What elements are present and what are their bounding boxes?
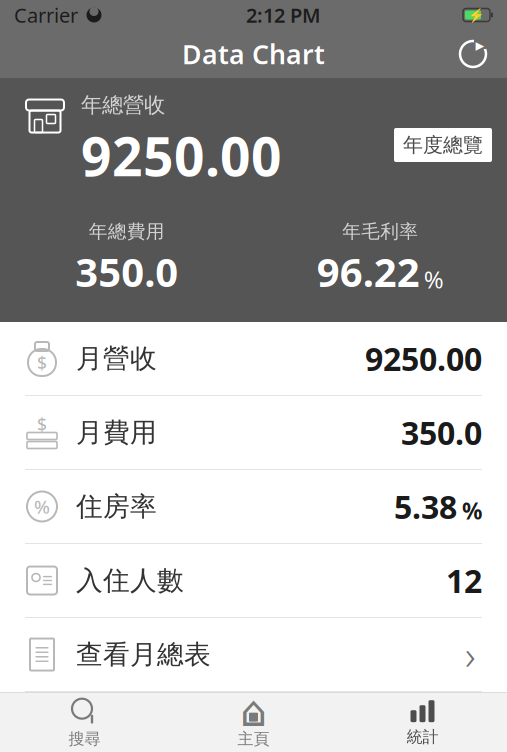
staticText: 5.38	[394, 485, 457, 528]
staticText: 12	[446, 559, 482, 602]
staticText: 主頁	[237, 729, 269, 749]
staticText: 350.0	[401, 411, 482, 454]
staticText: 年總營收	[81, 92, 165, 118]
staticText: ▸	[475, 35, 484, 55]
staticText: 住房率	[76, 490, 157, 523]
staticText: 9250.00	[365, 337, 482, 380]
staticText: 2:12 PM	[246, 2, 321, 28]
staticText: ⌂	[240, 687, 267, 735]
staticText: 入住人數	[76, 564, 184, 597]
staticText: 年總費用	[89, 220, 165, 243]
staticText: 年毛利率	[342, 220, 418, 243]
button[interactable]: 年度總覽	[394, 128, 492, 162]
button[interactable]: ⌂	[169, 693, 338, 751]
button[interactable]: $	[0, 322, 507, 395]
button[interactable]: 統計	[338, 693, 507, 751]
staticText: Carrier	[14, 2, 78, 28]
button[interactable]: 搜尋	[0, 693, 169, 751]
staticText: 月費用	[76, 416, 157, 449]
button[interactable]: 入住人數	[0, 544, 507, 617]
staticText: %	[462, 496, 482, 526]
staticText: ⚡	[468, 7, 485, 23]
staticText: ›	[465, 628, 476, 681]
button[interactable]: Refresh	[453, 34, 493, 74]
staticText: 9250.00	[81, 120, 282, 191]
staticText: 統計	[406, 727, 438, 747]
button[interactable]: 查看月總表	[0, 618, 507, 691]
staticText: %	[424, 263, 444, 295]
button[interactable]: %	[0, 470, 507, 543]
staticText: Data Chart	[182, 36, 325, 72]
staticText: 月營收	[76, 342, 157, 375]
staticText: $	[37, 413, 47, 436]
staticText: 搜尋	[68, 729, 100, 749]
button[interactable]: $	[0, 396, 507, 469]
staticText: $	[37, 351, 47, 374]
staticText: 年度總覽	[403, 133, 483, 157]
staticText: 96.22	[317, 245, 420, 298]
staticText: 查看月總表	[76, 638, 211, 671]
staticText: %	[34, 494, 50, 519]
staticText: 350.0	[75, 245, 178, 298]
